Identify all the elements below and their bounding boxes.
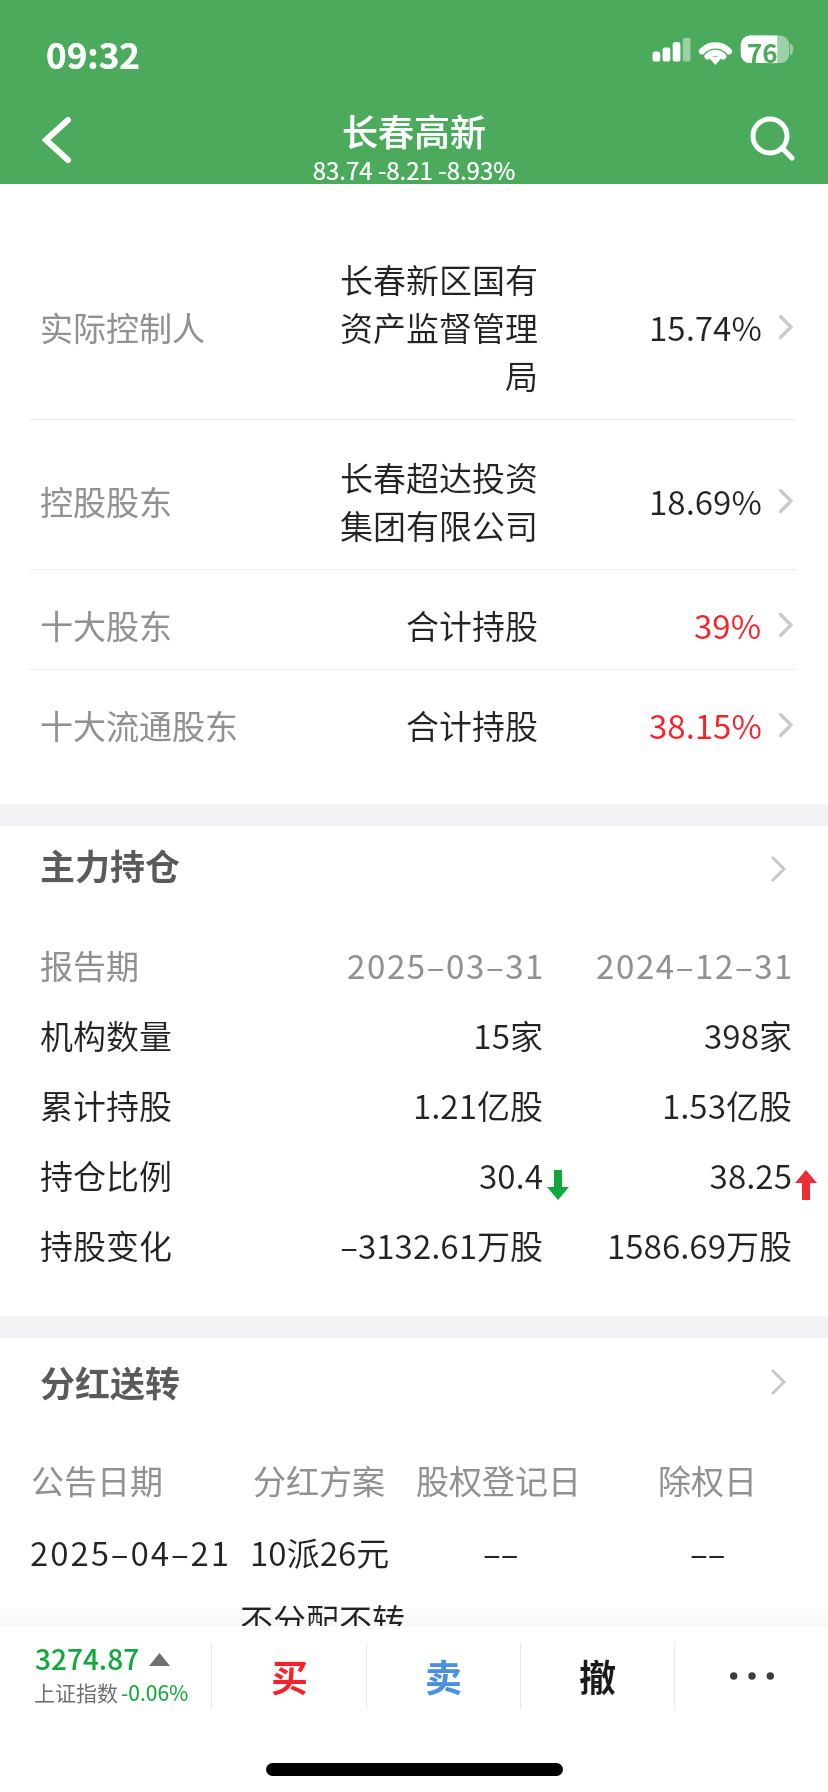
staticText: 不分配不转 [240,1595,405,1643]
staticText: 撤 [579,1649,616,1703]
staticText: 合计持股 [406,601,538,649]
button[interactable]: 分红送转 [0,1338,828,1427]
staticText: 76 [747,33,778,71]
staticText: 15.74% [649,303,762,351]
staticText: 十大流通股东 [40,701,238,749]
staticText: 分红方案 [253,1456,385,1504]
button[interactable]: 撤 [521,1626,674,1726]
staticText: -0.06% [121,1677,189,1707]
button[interactable]: Search [742,100,818,176]
staticText: 2025–04–21 [30,1528,231,1576]
staticText: 实际控制人 [40,303,205,351]
button[interactable]: 买 [212,1626,366,1726]
button[interactable]: 十大流通股东 [0,670,828,772]
staticText: 持仓比例 [40,1151,172,1199]
staticText: 长春超达投资 [340,453,538,501]
staticText: 1586.69万股 [492,1221,792,1269]
staticText: 主力持仓 [40,839,181,890]
button[interactable]: 实际控制人 [0,184,828,419]
staticText: 15家 [243,1011,543,1059]
button[interactable]: 主力持仓 [0,826,828,912]
staticText: 局 [505,351,538,399]
staticText: 长春高新 [0,104,828,152]
button[interactable]: 3274.87 [0,1626,211,1726]
staticText: 18.69% [649,477,762,525]
staticText: 累计持股 [40,1081,172,1129]
staticText: 资产监督管理 [340,303,538,351]
button[interactable]: 控股股东 [0,420,828,569]
button[interactable]: Back [22,104,92,176]
staticText: –3132.61万股 [243,1221,543,1269]
staticText: 1.21亿股 [243,1081,543,1129]
staticText: 38.15% [649,701,762,749]
staticText: 上证指数 [34,1677,118,1707]
staticText: 公告日期 [31,1456,163,1504]
staticText: 除权日 [658,1456,757,1504]
staticText: 报告期 [40,941,139,989]
staticText: 分红送转 [40,1356,181,1407]
staticText: –– [690,1528,726,1576]
staticText: 398家 [492,1011,792,1059]
staticText: –– [483,1528,519,1576]
staticText: 30.4 [243,1151,543,1199]
staticText: 买 [271,1649,308,1703]
staticText: 卖 [425,1649,462,1703]
staticText: 3274.87 [35,1638,140,1679]
staticText: 83.74 -8.21 -8.93% [0,152,828,184]
staticText: 控股股东 [40,477,172,525]
staticText: 2024–12–31 [494,941,794,989]
staticText: 39% [694,601,762,649]
staticText: 股权登记日 [416,1456,581,1504]
staticText: 38.25 [492,1151,792,1199]
staticText: 2025–03–31 [245,941,545,989]
button[interactable]: 卖 [367,1626,520,1726]
staticText: 09:32 [46,28,140,79]
staticText: 1.53亿股 [492,1081,792,1129]
staticText: 十大股东 [40,601,172,649]
staticText: 合计持股 [406,701,538,749]
staticText: 10派26元 [250,1528,390,1576]
staticText: 机构数量 [40,1011,172,1059]
staticText: 集团有限公司 [340,501,538,549]
staticText: 长春新区国有 [340,255,538,303]
button[interactable]: 十大股东 [0,570,828,669]
button[interactable]: More [675,1626,828,1726]
staticText: 持股变化 [40,1221,172,1269]
